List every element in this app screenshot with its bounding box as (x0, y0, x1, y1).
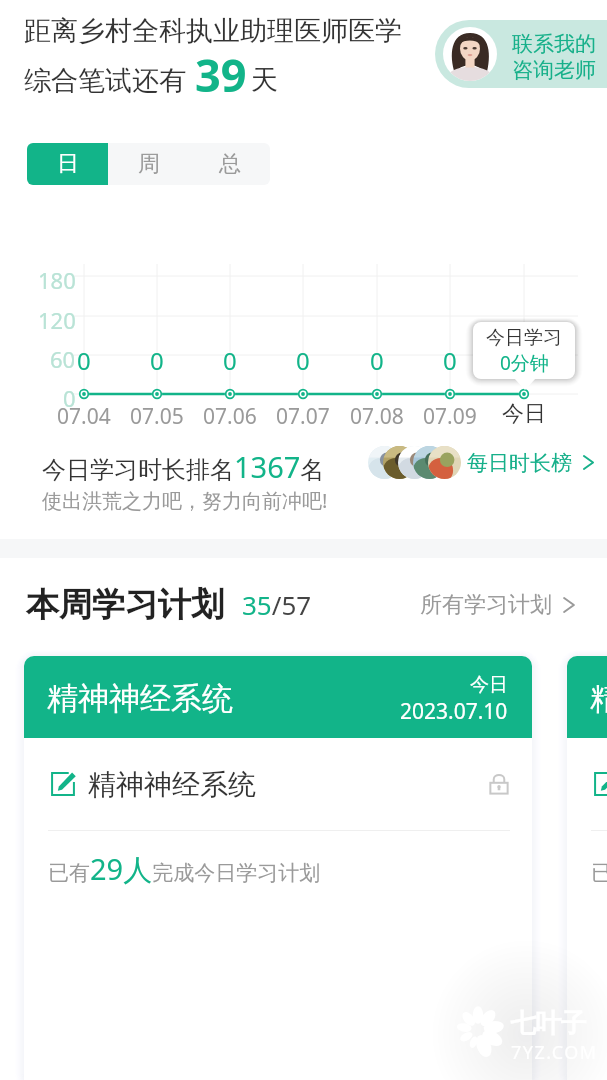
staticText: 咨询老师 (512, 57, 596, 83)
staticText: 今日学习时长排名1367名 (42, 447, 325, 486)
staticText: 07.07 (276, 402, 330, 431)
button[interactable]: 精神神经系统 (24, 656, 532, 1080)
staticText: 07.08 (350, 402, 404, 431)
staticText: 距离乡村全科执业助理医师医学 (24, 14, 402, 48)
staticText: 已有29人完成今日学习计划 (591, 849, 607, 889)
button[interactable]: 所有学习计划 (420, 591, 576, 619)
staticText: 0 (63, 383, 76, 413)
staticText: 180 (38, 265, 76, 295)
staticText: 七叶子 (511, 1007, 586, 1040)
staticText: 0 (296, 344, 310, 377)
staticText: 本周学习计划 (26, 584, 224, 626)
staticText: 2023.07.10 (400, 697, 508, 726)
staticText: 今日 (470, 673, 508, 697)
staticText: 0 (443, 344, 457, 377)
staticText: 60 (50, 344, 76, 374)
staticText: 39 (195, 44, 247, 105)
staticText: 周 (138, 150, 160, 178)
button[interactable]: 日 (27, 143, 108, 185)
other: Locked (487, 772, 511, 796)
staticText: 精神神经系统 (88, 767, 256, 802)
staticText: 联系我的 (512, 31, 596, 57)
staticText: 0 (223, 344, 237, 377)
staticText: 07.06 (203, 402, 257, 431)
staticText: 0 (150, 344, 164, 377)
button[interactable]: 每日时长榜 (368, 446, 595, 479)
staticText: 日 (57, 150, 79, 178)
staticText: 精神神经系统 (590, 679, 607, 718)
staticText: 07.05 (130, 402, 184, 431)
staticText: 0分钟 (500, 350, 549, 376)
staticText: 已有29人完成今日学习计划 (48, 849, 321, 889)
button[interactable]: 精神神经系统 (567, 656, 607, 1080)
staticText: 今日学习 (486, 326, 562, 350)
button[interactable]: 总 (189, 143, 270, 185)
staticText: 使出洪荒之力吧，努力向前冲吧! (42, 487, 328, 514)
staticText: 所有学习计划 (420, 591, 552, 619)
staticText: 7YZ.COM (511, 1040, 598, 1065)
staticText: 今日 (502, 400, 546, 428)
staticText: 0 (370, 344, 384, 377)
other: Edit (593, 771, 607, 797)
staticText: 35/57 (242, 587, 312, 622)
staticText: 0 (77, 344, 91, 377)
staticText: 天 (251, 63, 278, 97)
staticText: 07.09 (423, 402, 477, 431)
button[interactable]: 联系我的 (435, 20, 607, 88)
button[interactable]: 周 (108, 143, 189, 185)
staticText: 精神神经系统 (47, 679, 233, 718)
staticText: 综合笔试还有 (24, 64, 186, 98)
staticText: 07.04 (57, 402, 111, 431)
staticText: 总 (219, 150, 241, 178)
other: Edit (50, 771, 76, 797)
staticText: 每日时长榜 (467, 450, 572, 476)
staticText: 120 (38, 305, 76, 335)
